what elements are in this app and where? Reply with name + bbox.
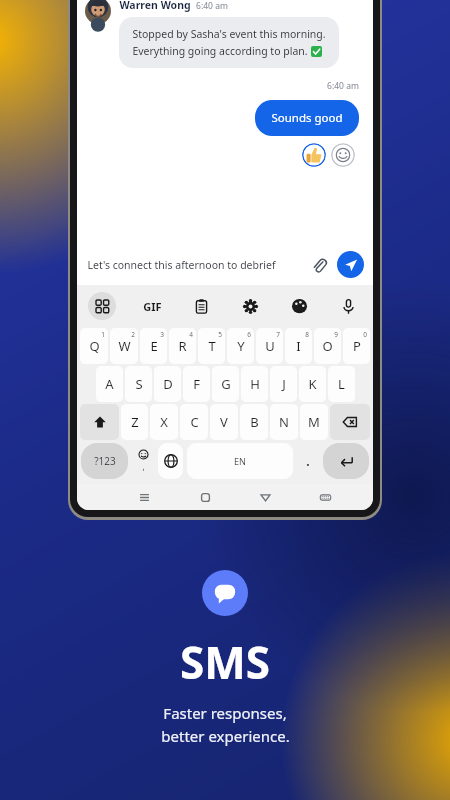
staticText: E [150, 337, 158, 355]
button[interactable]: EN [187, 443, 293, 479]
button[interactable]: Voice input [324, 285, 373, 327]
button[interactable]: Backspace [330, 404, 370, 440]
staticText: 6:40 am [327, 80, 359, 92]
staticText: better experience. [161, 726, 290, 746]
staticText: V [220, 413, 228, 431]
staticText: T [208, 337, 216, 355]
staticText: EN [234, 455, 246, 467]
button[interactable]: U [256, 328, 283, 364]
staticText: 2 [131, 330, 135, 339]
button[interactable]: Menu [114, 484, 175, 510]
staticText: U [265, 337, 275, 355]
button[interactable]: C [180, 404, 208, 440]
button[interactable]: Theme [275, 285, 324, 327]
staticText: K [308, 375, 317, 393]
button[interactable]: N [270, 404, 298, 440]
other: Warren Wong avatar [85, 0, 111, 24]
staticText: SMS [180, 632, 270, 692]
staticText: I [296, 337, 301, 355]
button[interactable]: A [96, 366, 123, 402]
button[interactable]: Sounds good [255, 100, 359, 136]
staticText: Everything going according to plan. [132, 44, 308, 58]
button[interactable]: G [212, 366, 239, 402]
button[interactable]: E [140, 328, 167, 364]
button[interactable]: Enter [323, 443, 369, 479]
staticText: ?123 [94, 454, 116, 468]
staticText: A [105, 375, 114, 393]
staticText: Let's connect this afternoon to debrief [87, 258, 276, 272]
staticText: . [306, 453, 310, 469]
button[interactable]: Stopped by Sasha's event this morning. [119, 17, 339, 68]
staticText: C [190, 413, 199, 431]
button[interactable]: Shift [80, 404, 119, 440]
button[interactable]: Add reaction [331, 143, 355, 167]
button[interactable]: Apps [88, 292, 116, 320]
staticText: W [118, 337, 131, 355]
staticText: 7 [276, 330, 280, 339]
staticText: 9 [334, 330, 338, 339]
button[interactable]: J [270, 366, 297, 402]
staticText: , [142, 461, 145, 472]
staticText: B [250, 413, 259, 431]
button[interactable]: D [154, 366, 181, 402]
staticText: 5 [218, 330, 222, 339]
button[interactable]: L [328, 366, 355, 402]
button[interactable]: M [300, 404, 328, 440]
button[interactable]: . [295, 441, 321, 481]
staticText: Z [131, 413, 139, 431]
button[interactable]: W [110, 328, 138, 364]
button[interactable]: V [210, 404, 238, 440]
staticText: 6 [247, 330, 251, 339]
button[interactable]: Emoji [130, 441, 156, 481]
button[interactable]: Clipboard [177, 285, 226, 327]
staticText: Y [237, 337, 245, 355]
button[interactable]: R [169, 328, 196, 364]
button[interactable]: Home [175, 484, 235, 510]
button[interactable]: ?123 [81, 443, 128, 479]
button[interactable]: H [241, 366, 268, 402]
button[interactable]: T [198, 328, 225, 364]
button[interactable]: Change language [158, 443, 183, 479]
button[interactable]: Back [235, 484, 295, 510]
staticText: Warren Wong [119, 0, 191, 12]
staticText: GIF [143, 299, 162, 314]
staticText: M [308, 413, 320, 431]
button[interactable]: Q [80, 328, 108, 364]
staticText: O [322, 337, 333, 355]
staticText: G [221, 375, 231, 393]
staticText: S [135, 375, 143, 393]
button[interactable]: B [240, 404, 268, 440]
button[interactable]: Attach file [307, 253, 331, 277]
button[interactable]: F [183, 366, 210, 402]
staticText: F [193, 375, 200, 393]
staticText: Stopped by Sasha's event this morning. [132, 27, 326, 41]
button[interactable]: X [150, 404, 178, 440]
button[interactable]: P [343, 328, 370, 364]
staticText: D [163, 375, 173, 393]
button[interactable]: Y [227, 328, 254, 364]
staticText: 8 [305, 330, 309, 339]
button[interactable]: SMS app icon [202, 570, 248, 616]
button[interactable]: I [285, 328, 312, 364]
button[interactable]: Hide keyboard [295, 484, 355, 510]
button[interactable]: S [125, 366, 152, 402]
button[interactable]: Let's connect this afternoon to debrief [87, 258, 307, 272]
staticText: L [338, 375, 345, 393]
staticText: 3 [160, 330, 164, 339]
button[interactable]: Z [121, 404, 148, 440]
staticText: 6:40 am [196, 0, 228, 12]
button[interactable]: Settings [226, 285, 275, 327]
button[interactable]: Thumbs up reaction [302, 143, 326, 167]
staticText: 0 [363, 330, 367, 339]
staticText: Faster responses, [163, 703, 287, 723]
staticText: 4 [189, 330, 193, 339]
staticText: 1 [101, 330, 105, 339]
staticText: P [353, 337, 361, 355]
staticText: Sounds good [271, 110, 343, 126]
button[interactable]: Send [337, 251, 364, 278]
staticText: Q [89, 337, 100, 355]
button[interactable]: K [299, 366, 326, 402]
button[interactable]: GIF [127, 299, 177, 314]
button[interactable]: O [314, 328, 341, 364]
staticText: X [160, 413, 168, 431]
